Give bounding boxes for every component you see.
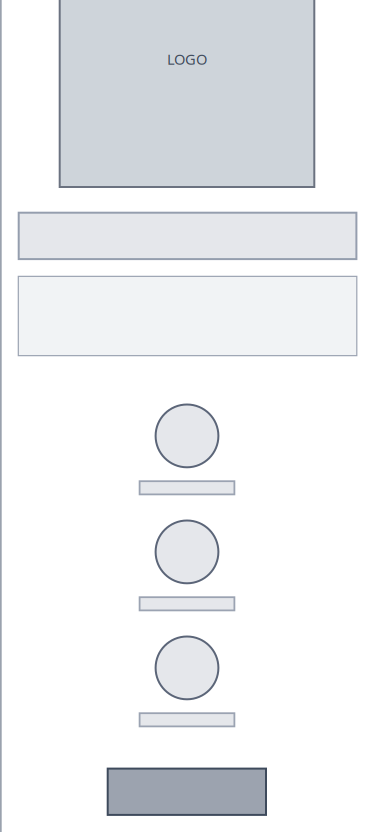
button[interactable]: Avatar	[155, 635, 219, 700]
button[interactable]: Avatar	[155, 403, 219, 468]
button[interactable]: Avatar	[155, 519, 219, 584]
button[interactable]: Message field	[18, 276, 357, 356]
button[interactable]: Submit	[107, 768, 267, 816]
staticText: LOGO	[167, 49, 207, 69]
button[interactable]: Name field	[18, 212, 357, 260]
